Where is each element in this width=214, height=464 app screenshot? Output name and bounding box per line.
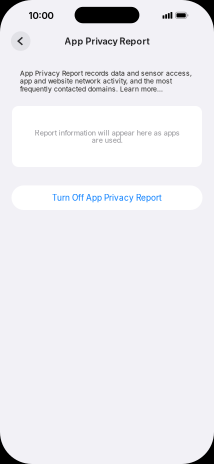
staticText: Report information will appear here as a… [34, 129, 179, 144]
staticText: Turn Off App Privacy Report [52, 194, 162, 202]
staticText: App Privacy Report [64, 37, 149, 46]
button[interactable]: Turn Off App Privacy Report [11, 185, 202, 210]
staticText: App Privacy Report records data and sens… [20, 69, 192, 93]
staticText: 10:00 [28, 11, 53, 20]
button[interactable]: Back [11, 31, 30, 51]
